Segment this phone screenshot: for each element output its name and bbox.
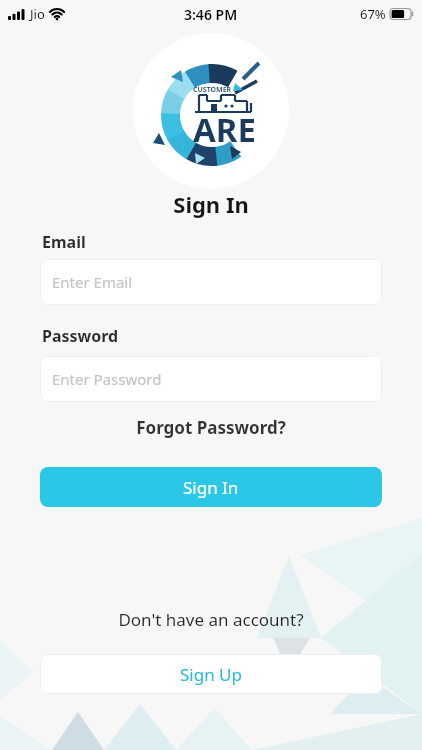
staticText: 3:46 PM xyxy=(184,5,238,24)
staticText: ARE xyxy=(193,107,256,152)
staticText: Enter Password xyxy=(52,369,162,389)
staticText: Email xyxy=(42,231,86,253)
button[interactable]: Forgot Password? xyxy=(0,416,422,439)
staticText: Don't have an account? xyxy=(0,608,422,631)
staticText: CUSTOMER xyxy=(193,85,232,95)
button[interactable]: Sign In xyxy=(40,467,382,507)
staticText: Sign In xyxy=(0,189,422,219)
button[interactable]: Sign Up xyxy=(40,654,382,694)
staticText: Sign In xyxy=(183,476,239,499)
staticText: Jio xyxy=(30,5,45,23)
button[interactable]: Enter Email xyxy=(40,259,382,305)
staticText: Enter Email xyxy=(52,272,133,292)
button[interactable]: Enter Password xyxy=(40,356,382,402)
staticText: Sign Up xyxy=(180,663,242,686)
staticText: Password xyxy=(42,325,119,347)
staticText: 67% xyxy=(360,5,386,23)
